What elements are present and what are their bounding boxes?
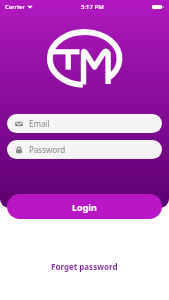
staticText: Carrier xyxy=(5,3,25,11)
button[interactable]: Email xyxy=(7,114,162,133)
staticText: 3:17 PM xyxy=(81,3,104,11)
staticText: Password xyxy=(29,144,66,155)
staticText: Login xyxy=(72,201,97,213)
staticText: Email xyxy=(29,118,50,129)
button[interactable]: Login xyxy=(7,194,162,219)
button[interactable]: Forget password xyxy=(45,258,124,275)
staticText: Forget password xyxy=(51,261,118,272)
button[interactable]: Password xyxy=(7,140,162,159)
